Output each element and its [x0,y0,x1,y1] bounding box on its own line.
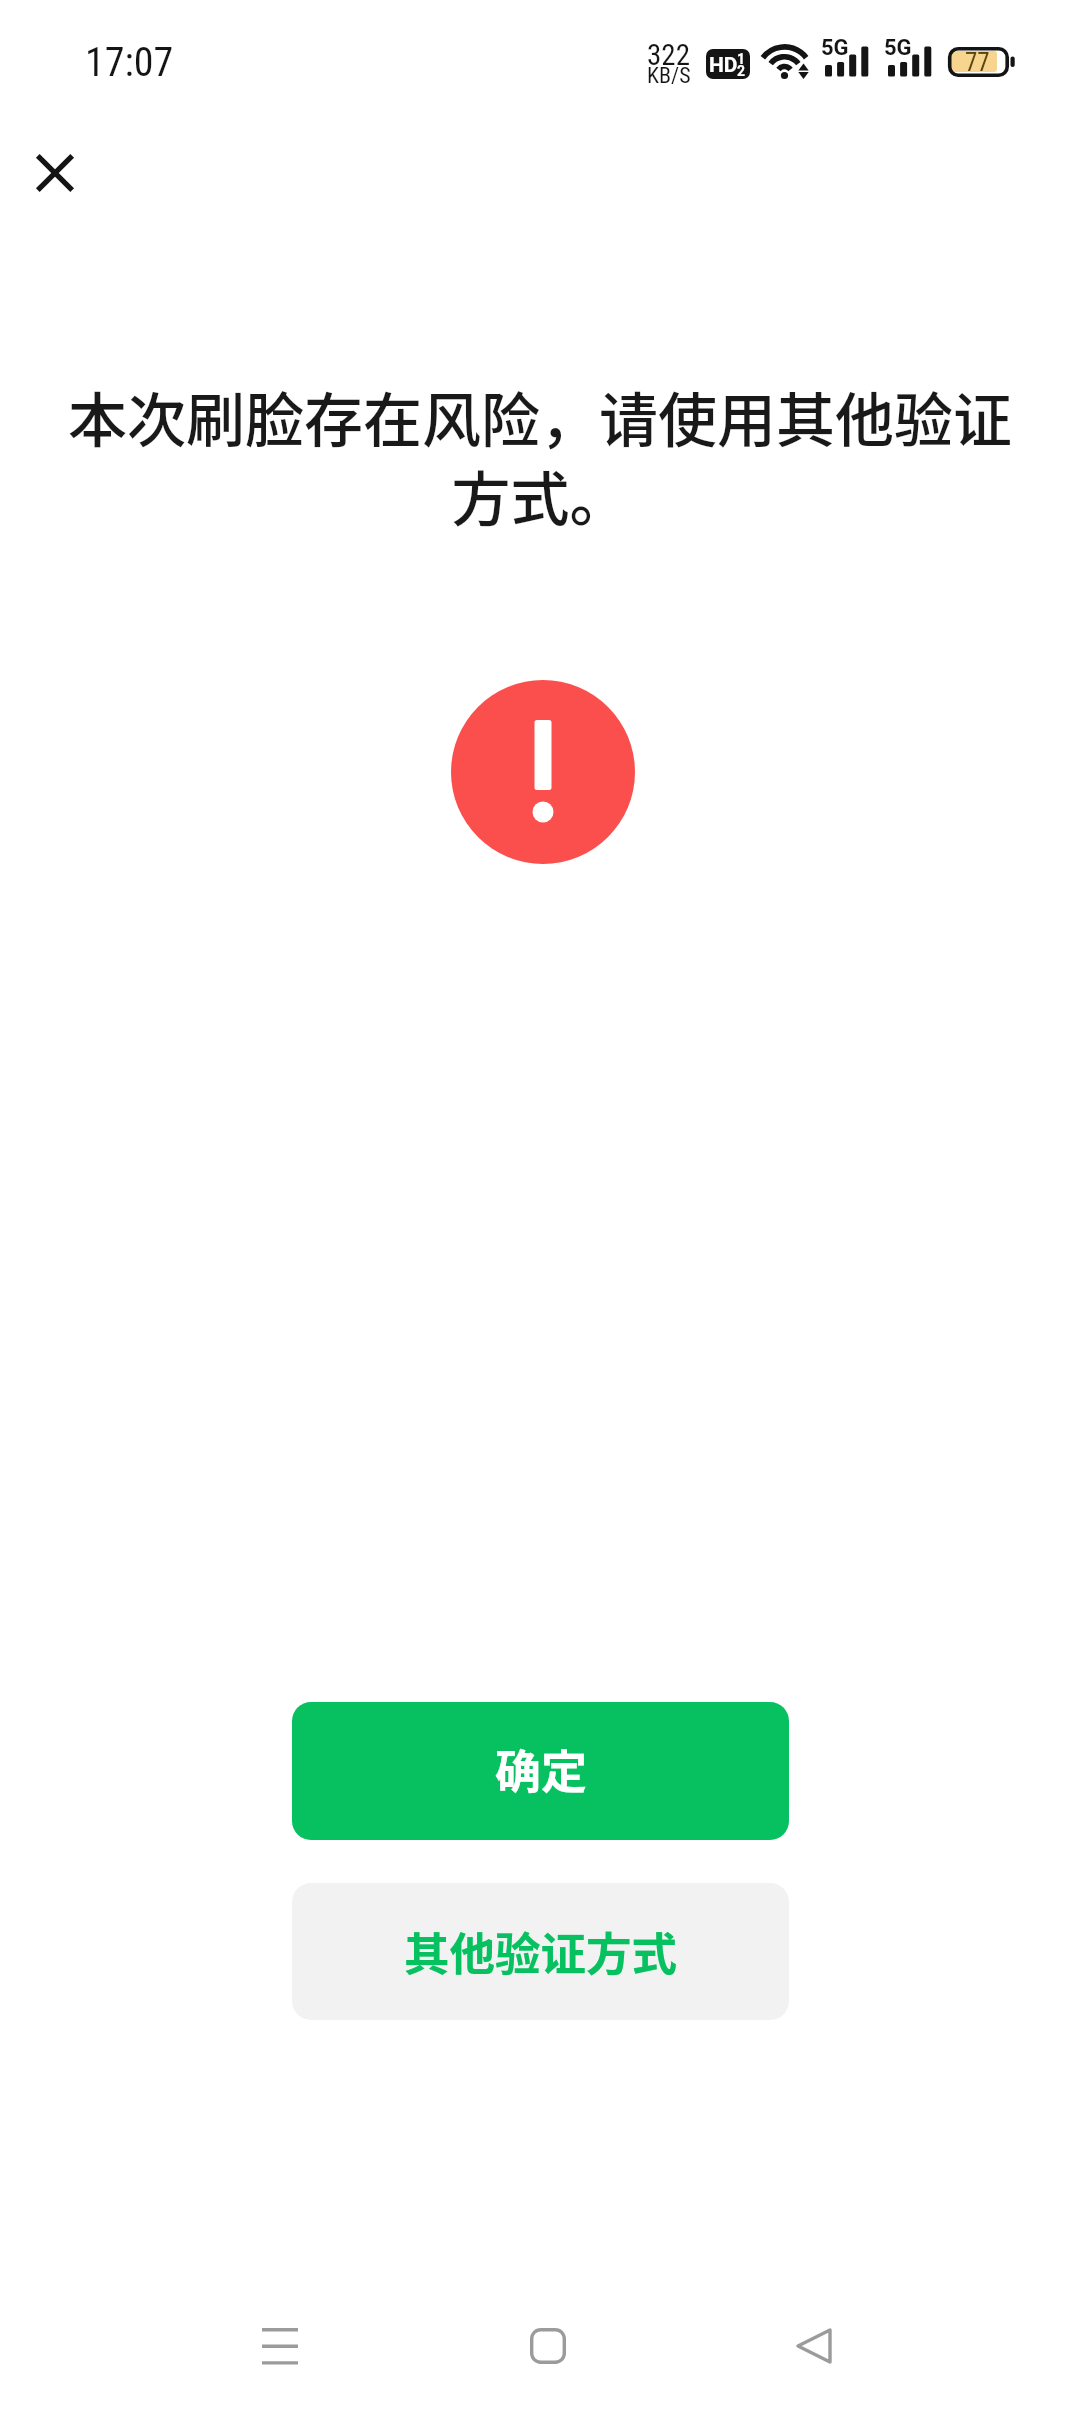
staticText: 1 [737,51,746,67]
staticText: 17:07 [85,39,174,86]
staticText: 其他验证方式 [404,1918,678,1984]
staticText: 5G [884,35,912,61]
button[interactable]: Recent apps [190,2280,370,2412]
staticText: KB/S [647,63,691,89]
staticText: 5G [821,35,849,61]
staticText: 77 [965,48,990,77]
staticText: 本次刷脸存在风险，请使用其他验证方式。 [52,374,1028,538]
staticText: 322 [647,38,690,72]
button[interactable]: Back [724,2280,904,2412]
button[interactable]: 其他验证方式 [292,1883,789,2020]
staticText: 2 [737,63,746,79]
button[interactable]: Home [458,2280,638,2412]
staticText: 确定 [495,1735,587,1802]
staticText: HD [709,53,738,78]
button[interactable]: Close [1,119,109,227]
button[interactable]: 确定 [292,1702,789,1840]
